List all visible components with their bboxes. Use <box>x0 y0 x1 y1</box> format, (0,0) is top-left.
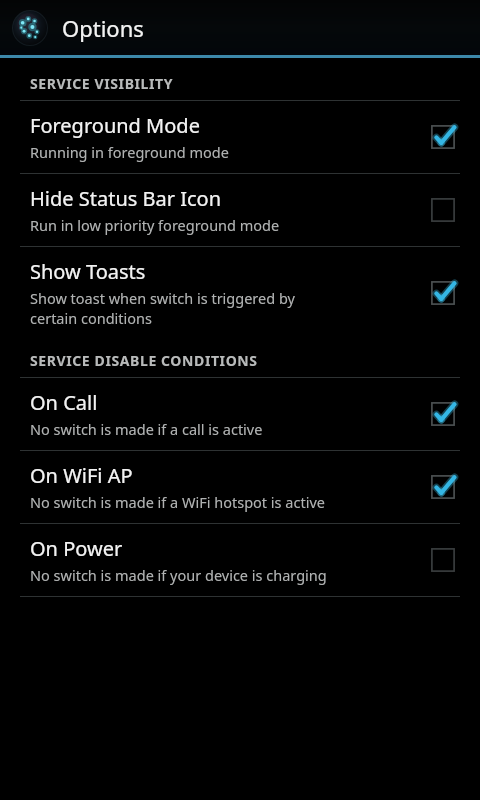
staticText: certain conditions <box>30 308 152 328</box>
staticText: SERVICE DISABLE CONDITIONS <box>30 351 258 370</box>
staticText: On Power <box>30 535 123 562</box>
staticText: No switch is made if a call is active <box>30 419 263 439</box>
other: Checked <box>428 399 458 429</box>
staticText: Run in low priority foreground mode <box>30 215 280 235</box>
staticText: Show toast when switch is triggered by <box>30 288 295 308</box>
other: Checked <box>428 278 458 308</box>
other: Unchecked <box>428 195 458 225</box>
button[interactable]: Hide Status Bar Icon <box>0 174 480 246</box>
staticText: Show Toasts <box>30 258 146 285</box>
staticText: On Call <box>30 389 98 416</box>
staticText: SERVICE VISIBILITY <box>30 74 174 93</box>
button[interactable]: On Power <box>0 524 480 596</box>
staticText: On WiFi AP <box>30 462 133 489</box>
other: Unchecked <box>428 545 458 575</box>
other: Checked <box>428 472 458 502</box>
staticText: No switch is made if a WiFi hotspot is a… <box>30 492 325 512</box>
button[interactable]: On Call <box>0 378 480 450</box>
button[interactable]: On WiFi AP <box>0 451 480 523</box>
staticText: Foreground Mode <box>30 112 200 139</box>
staticText: Running in foreground mode <box>30 142 229 162</box>
staticText: No switch is made if your device is char… <box>30 565 327 585</box>
staticText: Hide Status Bar Icon <box>30 185 222 212</box>
other: Checked <box>428 122 458 152</box>
staticText: Options <box>62 13 144 43</box>
button[interactable]: Foreground Mode <box>0 101 480 173</box>
button[interactable]: Show Toasts <box>0 247 480 339</box>
